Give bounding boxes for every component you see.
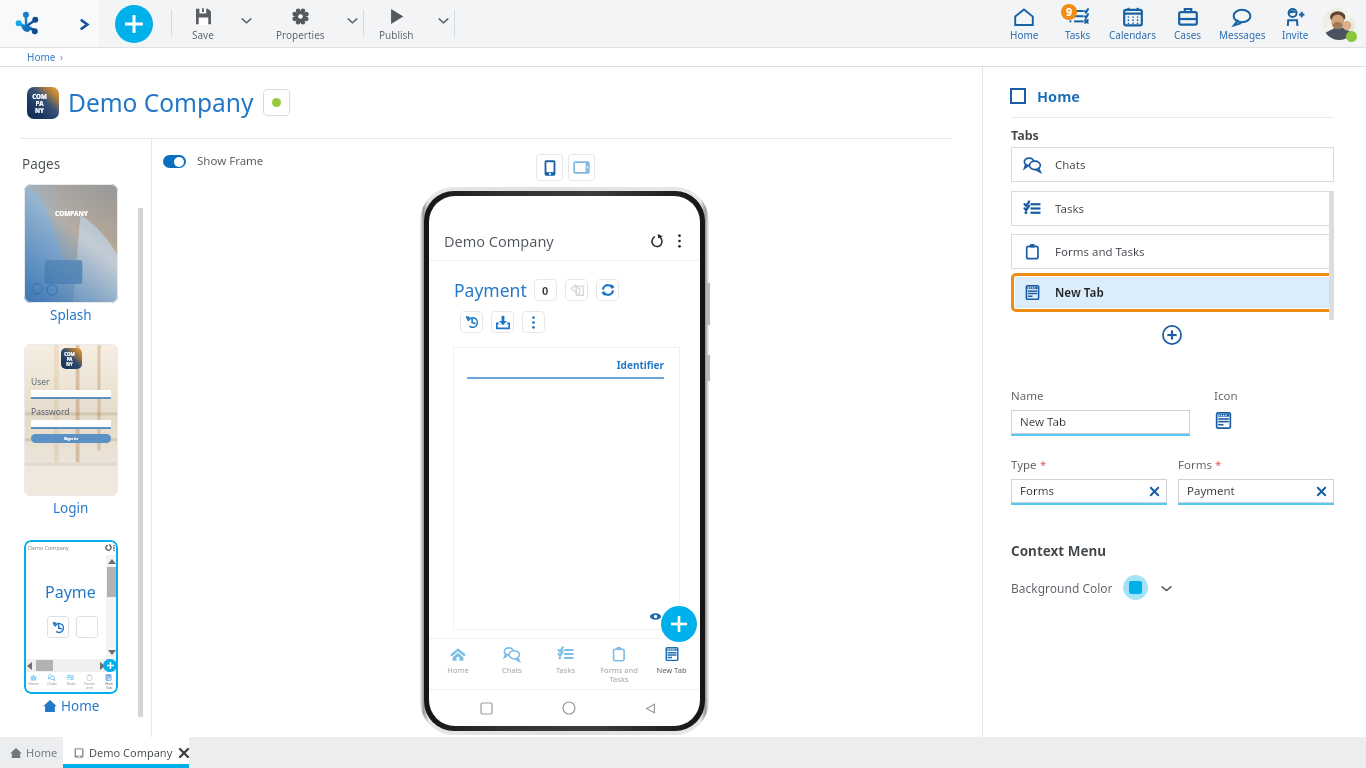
- staticText: Demo Company: [89, 745, 173, 760]
- staticText: Chats: [1055, 157, 1086, 173]
- staticText: 0: [664, 610, 670, 622]
- staticText: 9: [1066, 5, 1073, 19]
- button[interactable]: Choose icon: [1214, 411, 1233, 430]
- button[interactable]: Phone view: [536, 154, 563, 181]
- button[interactable]: Home: [431, 639, 485, 689]
- staticText: Forms and Tasks: [600, 665, 638, 684]
- button[interactable]: [491, 311, 514, 333]
- button[interactable]: Home: [10, 737, 63, 768]
- button[interactable]: Save: [183, 0, 223, 47]
- button[interactable]: [565, 279, 588, 301]
- staticText: Tabs: [1011, 127, 1039, 144]
- staticText: Properties: [276, 28, 325, 42]
- button[interactable]: Publish: [372, 0, 420, 47]
- button[interactable]: New Tab: [1015, 277, 1330, 308]
- button[interactable]: More options: [433, 0, 453, 47]
- staticText: COMPANY: [55, 209, 88, 218]
- staticText: Chats: [47, 681, 57, 686]
- button[interactable]: Home: [997, 0, 1051, 47]
- staticText: Password: [31, 406, 70, 418]
- button[interactable]: Cases: [1161, 0, 1214, 47]
- staticText: Forms: [1020, 483, 1054, 499]
- staticText: Show Frame: [197, 153, 264, 169]
- staticText: ›: [60, 50, 64, 64]
- staticText: Payme: [45, 581, 96, 603]
- staticText: Forms and Tasks: [1055, 244, 1145, 260]
- staticText: New Tab: [1020, 414, 1067, 430]
- button[interactable]: Messages: [1214, 0, 1270, 47]
- staticText: Demo Company: [28, 544, 69, 551]
- button[interactable]: COMPANY: [0, 184, 152, 324]
- button[interactable]: Properties: [269, 0, 331, 47]
- staticText: Sign in: [64, 436, 78, 442]
- staticText: COM PA NY: [32, 92, 47, 114]
- button[interactable]: Invite: [1270, 0, 1320, 47]
- button[interactable]: [522, 311, 545, 333]
- button[interactable]: More options: [342, 0, 362, 47]
- staticText: Context Menu: [1011, 542, 1107, 560]
- button[interactable]: Chats: [485, 639, 539, 689]
- staticText: COM PA NY: [64, 351, 75, 367]
- staticText: User: [31, 376, 50, 388]
- staticText: Tasks: [66, 681, 76, 686]
- button[interactable]: COM PA NY: [0, 344, 152, 517]
- staticText: Home: [447, 665, 469, 675]
- button[interactable]: Logo: [14, 10, 42, 38]
- button[interactable]: Demo Company: [68, 86, 254, 119]
- button[interactable]: Tasks: [1024, 191, 1334, 226]
- staticText: Tasks: [556, 665, 575, 675]
- button[interactable]: Profile: [1321, 6, 1357, 42]
- staticText: New Tab: [105, 681, 113, 690]
- staticText: Pages: [22, 155, 61, 173]
- button[interactable]: Forms: [1020, 479, 1159, 503]
- staticText: Home: [26, 745, 58, 760]
- button[interactable]: Tasks: [539, 639, 592, 689]
- staticText: Home: [61, 697, 100, 715]
- staticText: Type: [1011, 457, 1040, 473]
- button[interactable]: 0: [534, 279, 557, 301]
- button[interactable]: Status: [263, 89, 290, 116]
- button[interactable]: Tablet view: [568, 154, 595, 181]
- button[interactable]: Expand colors: [1157, 579, 1175, 597]
- staticText: *: [1215, 457, 1222, 473]
- button[interactable]: New Tab: [645, 639, 698, 689]
- staticText: Payment: [1187, 483, 1235, 499]
- staticText: Chats: [502, 665, 522, 675]
- button[interactable]: Background color: [1123, 575, 1148, 600]
- button[interactable]: Demo Company: [0, 540, 152, 715]
- button[interactable]: Add record: [661, 606, 697, 642]
- button[interactable]: Forms and Tasks: [592, 639, 645, 689]
- button[interactable]: Home: [27, 50, 56, 64]
- button[interactable]: Refresh: [648, 232, 666, 250]
- staticText: Tasks: [1065, 28, 1091, 42]
- button[interactable]: Create new: [115, 5, 153, 43]
- staticText: Cases: [1174, 28, 1202, 42]
- staticText: Forms: [1178, 457, 1215, 473]
- button[interactable]: Home: [1011, 86, 1080, 106]
- staticText: Calendars: [1109, 28, 1157, 42]
- button[interactable]: [596, 279, 619, 301]
- button[interactable]: Payment: [1187, 479, 1326, 503]
- button[interactable]: Calendars: [1104, 0, 1161, 47]
- button[interactable]: Demo Company: [63, 737, 189, 768]
- staticText: Login: [53, 499, 89, 517]
- button[interactable]: Chats: [1024, 147, 1334, 182]
- staticText: Messages: [1219, 28, 1266, 42]
- staticText: Invite: [1282, 28, 1309, 42]
- button[interactable]: Show Frame toggle: [163, 155, 186, 168]
- staticText: Payment: [454, 278, 527, 302]
- button[interactable]: More options: [236, 0, 256, 47]
- staticText: Background Color: [1011, 580, 1113, 596]
- button[interactable]: [460, 311, 483, 333]
- staticText: Splash: [50, 306, 92, 324]
- button[interactable]: More: [671, 233, 687, 249]
- button[interactable]: 9: [1051, 0, 1104, 47]
- button[interactable]: Add tab: [1161, 324, 1183, 346]
- staticText: Save: [192, 28, 214, 42]
- button[interactable]: Forms and Tasks: [1024, 234, 1334, 269]
- staticText: Identifier: [467, 358, 664, 372]
- staticText: Forms and: [84, 681, 95, 690]
- button[interactable]: Expand menu: [74, 14, 94, 34]
- staticText: *: [1040, 457, 1047, 473]
- staticText: Demo Company: [444, 231, 554, 251]
